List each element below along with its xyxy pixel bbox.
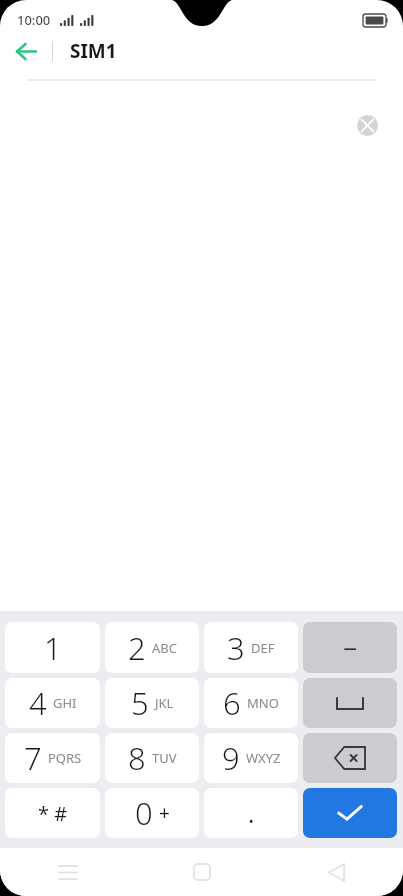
button[interactable]: −	[303, 622, 397, 673]
button[interactable]: 2	[105, 622, 199, 673]
staticText: WXYZ	[246, 749, 281, 767]
button[interactable]: Backspace	[303, 733, 397, 783]
staticText: * #	[38, 800, 68, 827]
button[interactable]: 4	[5, 678, 100, 728]
staticText: SIM1	[70, 38, 117, 64]
staticText: TUV	[152, 749, 177, 767]
staticText: JKL	[155, 694, 174, 712]
button[interactable]: Menu	[0, 848, 135, 896]
other: Confirm	[335, 802, 365, 824]
staticText: PQRS	[48, 749, 82, 767]
staticText: DEF	[251, 639, 275, 657]
staticText: −	[343, 631, 358, 665]
other: Space	[337, 698, 363, 709]
staticText: GHI	[53, 694, 77, 712]
button[interactable]: 8	[105, 733, 199, 783]
staticText: 8	[128, 737, 146, 779]
button[interactable]: Back	[269, 848, 403, 896]
button[interactable]: Clear	[352, 110, 382, 140]
button[interactable]: 5	[105, 678, 199, 728]
button[interactable]: * #	[5, 788, 100, 838]
staticText: 3	[227, 627, 245, 669]
staticText: 0	[135, 792, 153, 834]
staticText: .	[248, 797, 255, 830]
staticText: 9	[222, 737, 240, 779]
button[interactable]: Home	[135, 848, 269, 896]
button[interactable]: 1	[5, 622, 100, 673]
staticText: +	[159, 800, 170, 826]
staticText: 10:00	[17, 11, 51, 29]
button[interactable]: 3	[204, 622, 298, 673]
button[interactable]: 9	[204, 733, 298, 783]
button[interactable]: 6	[204, 678, 298, 728]
staticText: 1	[44, 627, 62, 669]
other: Backspace	[335, 747, 365, 769]
button[interactable]: 0	[105, 788, 199, 838]
staticText: 4	[29, 682, 47, 724]
button[interactable]: 7	[5, 733, 100, 783]
staticText: 5	[131, 682, 149, 724]
button[interactable]: .	[204, 788, 298, 838]
staticText: MNO	[247, 694, 279, 712]
staticText: 7	[24, 737, 42, 779]
button[interactable]: Space	[303, 678, 397, 728]
button[interactable]: Back	[0, 29, 52, 73]
button[interactable]: Confirm	[303, 788, 397, 838]
staticText: ABC	[152, 639, 177, 657]
staticText: 2	[128, 627, 146, 669]
staticText: 6	[223, 682, 241, 724]
